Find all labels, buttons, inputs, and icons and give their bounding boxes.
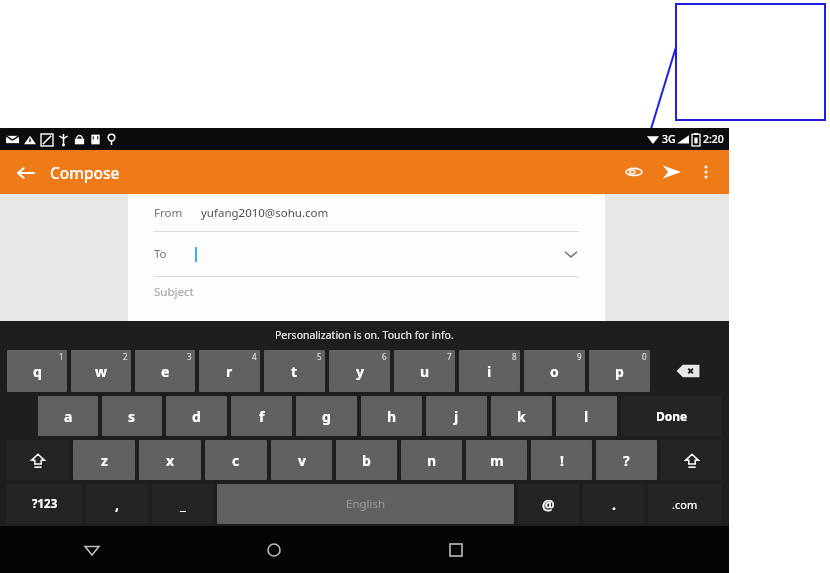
button[interactable]: l bbox=[556, 396, 617, 436]
button[interactable]: w bbox=[71, 350, 131, 392]
button[interactable]: i bbox=[459, 350, 520, 392]
staticText: j bbox=[454, 407, 459, 426]
button[interactable]: Backspace bbox=[654, 350, 722, 392]
staticText: 7 bbox=[447, 351, 452, 362]
button[interactable]: , bbox=[86, 484, 148, 524]
staticText: x bbox=[166, 451, 175, 470]
staticText: To bbox=[154, 246, 167, 262]
button[interactable]: j bbox=[426, 396, 487, 436]
button[interactable]: g bbox=[296, 396, 357, 436]
staticText: a bbox=[64, 407, 73, 426]
staticText: f bbox=[259, 407, 265, 426]
button[interactable]: k bbox=[491, 396, 552, 436]
button[interactable]: Subject bbox=[154, 277, 579, 307]
button[interactable]: @ bbox=[518, 484, 579, 524]
staticText: c bbox=[232, 451, 240, 470]
staticText: 1 bbox=[59, 351, 64, 362]
staticText: l bbox=[584, 407, 589, 426]
button[interactable]: Done bbox=[621, 396, 722, 436]
staticText: n bbox=[427, 451, 437, 470]
button[interactable]: To bbox=[154, 232, 579, 276]
staticText: w bbox=[95, 362, 107, 381]
staticText: m bbox=[490, 451, 504, 470]
staticText: t bbox=[291, 362, 298, 381]
staticText: 3 bbox=[187, 351, 192, 362]
staticText: 8 bbox=[512, 351, 517, 362]
button[interactable]: d bbox=[166, 396, 227, 436]
staticText: ! bbox=[560, 451, 564, 470]
staticText: 9 bbox=[577, 351, 582, 362]
staticText: yufang2010@sohu.com bbox=[201, 205, 329, 221]
button[interactable]: More options bbox=[691, 157, 721, 187]
staticText: @ bbox=[542, 495, 555, 514]
button[interactable]: Expand recipients bbox=[563, 246, 579, 262]
staticText: Personalization is on. Touch for info. bbox=[275, 328, 454, 342]
button[interactable]: n bbox=[401, 440, 462, 480]
button[interactable]: f bbox=[231, 396, 292, 436]
staticText: Done bbox=[656, 408, 688, 424]
staticText: q bbox=[33, 362, 42, 381]
staticText: 3G bbox=[662, 132, 676, 146]
staticText: From bbox=[154, 205, 183, 221]
button[interactable]: Back bbox=[10, 156, 126, 189]
staticText: Compose bbox=[50, 162, 120, 183]
staticText: u bbox=[420, 362, 430, 381]
staticText: z bbox=[101, 451, 108, 470]
button[interactable]: a bbox=[38, 396, 98, 436]
staticText: r bbox=[226, 362, 233, 381]
button[interactable]: m bbox=[466, 440, 527, 480]
button[interactable]: z bbox=[73, 440, 135, 480]
button[interactable]: Home bbox=[183, 526, 365, 573]
button[interactable]: h bbox=[361, 396, 422, 436]
staticText: o bbox=[550, 362, 559, 381]
button[interactable]: t bbox=[264, 350, 325, 392]
staticText: ? bbox=[623, 451, 630, 470]
staticText: .com bbox=[672, 497, 698, 512]
button[interactable]: Shift bbox=[7, 440, 69, 480]
staticText: 4 bbox=[252, 351, 257, 362]
button[interactable]: u bbox=[394, 350, 455, 392]
button[interactable]: b bbox=[336, 440, 397, 480]
button[interactable]: q bbox=[7, 350, 67, 392]
staticText: Subject bbox=[154, 284, 194, 300]
button[interactable]: Back bbox=[0, 526, 183, 573]
staticText: ?123 bbox=[32, 496, 58, 512]
button[interactable]: Send bbox=[655, 155, 689, 189]
staticText: _ bbox=[180, 495, 186, 514]
staticText: d bbox=[192, 407, 201, 426]
other: Back bbox=[16, 164, 34, 182]
staticText: e bbox=[161, 362, 170, 381]
button[interactable]: From bbox=[154, 194, 579, 231]
staticText: 5 bbox=[317, 351, 322, 362]
staticText: g bbox=[322, 407, 331, 426]
button[interactable]: x bbox=[139, 440, 201, 480]
button[interactable]: v bbox=[271, 440, 332, 480]
staticText: English bbox=[346, 496, 386, 512]
button[interactable]: . bbox=[583, 484, 644, 524]
button[interactable]: r bbox=[199, 350, 260, 392]
button[interactable]: c bbox=[205, 440, 267, 480]
staticText: p bbox=[615, 362, 624, 381]
button[interactable]: Personalization is on. Touch for info. bbox=[0, 321, 729, 348]
button[interactable]: _ bbox=[152, 484, 213, 524]
staticText: 6 bbox=[382, 351, 387, 362]
staticText: 2:20 bbox=[703, 132, 724, 146]
button[interactable]: ?123 bbox=[7, 484, 82, 524]
button[interactable]: ! bbox=[531, 440, 592, 480]
button[interactable]: y bbox=[329, 350, 390, 392]
button[interactable]: e bbox=[135, 350, 195, 392]
button[interactable]: Shift bbox=[661, 440, 722, 480]
staticText: b bbox=[362, 451, 371, 470]
button[interactable]: English bbox=[217, 484, 514, 524]
button[interactable]: Recents bbox=[365, 526, 547, 573]
staticText: , bbox=[115, 495, 119, 514]
button[interactable]: p bbox=[589, 350, 650, 392]
button[interactable]: s bbox=[102, 396, 162, 436]
button[interactable]: ? bbox=[596, 440, 657, 480]
button[interactable]: o bbox=[524, 350, 585, 392]
staticText: s bbox=[128, 407, 136, 426]
staticText: k bbox=[517, 407, 526, 426]
staticText: . bbox=[612, 495, 616, 514]
button[interactable]: .com bbox=[648, 484, 722, 524]
button[interactable]: Attach bbox=[617, 155, 651, 189]
